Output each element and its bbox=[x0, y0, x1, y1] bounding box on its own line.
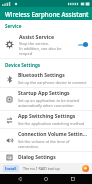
button[interactable]: Assist service toggle bbox=[77, 41, 88, 48]
staticText: Set up an application to be started auto… bbox=[18, 98, 80, 108]
staticText: Assist Service bbox=[19, 33, 55, 40]
staticText: Device Settings bbox=[5, 62, 41, 68]
staticText: Bluetooth Settings bbox=[18, 72, 65, 79]
button[interactable]: Bluetooth Settings bbox=[0, 70, 92, 87]
staticText: Stop the service. In addition, can also … bbox=[19, 41, 74, 56]
button[interactable]: App Switching Settings bbox=[0, 111, 92, 128]
staticText: Connection Volume Settings bbox=[18, 131, 88, 138]
staticText: Set the volume at the time of connection… bbox=[18, 139, 88, 149]
staticText: Wireless Earphone Assistant bbox=[5, 10, 89, 18]
staticText: Install bbox=[5, 166, 17, 171]
button[interactable]: Wireless Earphone Assistant bbox=[0, 7, 92, 20]
staticText: Startup App Settings bbox=[18, 90, 70, 97]
staticText: The no.1 RAID tool up bbox=[23, 166, 60, 171]
button[interactable]: Install bbox=[0, 163, 92, 174]
staticText: Dialog Settings bbox=[18, 154, 56, 161]
button[interactable]: Back bbox=[13, 174, 27, 184]
staticText: App Switching Settings bbox=[18, 113, 76, 120]
button[interactable]: Home bbox=[39, 174, 53, 184]
button[interactable]: Startup App Settings bbox=[0, 88, 92, 110]
staticText: Set up the earphone device to connect bbox=[18, 80, 87, 85]
staticText: Service bbox=[5, 23, 22, 29]
button[interactable]: Connection Volume Settings bbox=[0, 129, 92, 151]
button[interactable]: Dialog Settings bbox=[0, 152, 92, 163]
button[interactable]: Assist Service bbox=[0, 31, 92, 58]
button[interactable]: Recent apps bbox=[66, 174, 80, 184]
staticText: Set the application switching method bbox=[18, 121, 85, 126]
